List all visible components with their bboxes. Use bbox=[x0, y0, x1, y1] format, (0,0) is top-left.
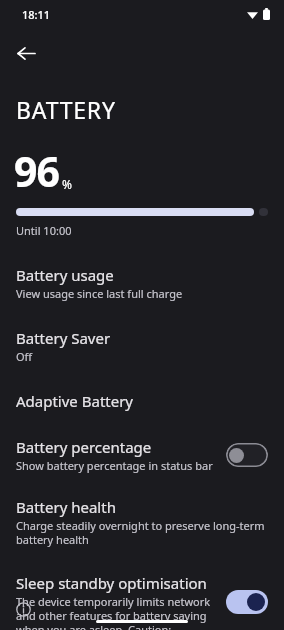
button[interactable]: Battery percentage bbox=[0, 437, 284, 473]
staticText: 96 bbox=[14, 143, 59, 199]
staticText: Show battery percentage in status bar bbox=[16, 458, 213, 473]
staticText: BATTERY bbox=[16, 94, 116, 125]
staticText: Adaptive Battery bbox=[16, 391, 134, 411]
staticText: Battery percentage bbox=[16, 437, 152, 457]
button[interactable]: Back bbox=[8, 35, 44, 71]
staticText: Off bbox=[16, 349, 33, 364]
staticText: Battery usage bbox=[16, 265, 114, 285]
staticText: View usage since last full charge bbox=[16, 286, 183, 301]
staticText: % bbox=[62, 176, 72, 192]
button[interactable]: Adaptive Battery bbox=[0, 391, 284, 411]
button[interactable]: Battery health bbox=[0, 497, 284, 547]
staticText: The device temporarily limits network an… bbox=[16, 594, 218, 630]
staticText: 18:11 bbox=[22, 7, 51, 22]
button[interactable]: Battery usage bbox=[0, 265, 284, 301]
staticText: Battery health bbox=[16, 497, 116, 517]
staticText: Battery Saver bbox=[16, 328, 111, 348]
button[interactable]: Battery percentage bbox=[226, 443, 268, 467]
button[interactable]: Sleep standby optimisation bbox=[0, 573, 284, 630]
staticText: Until 10:00 bbox=[16, 223, 72, 238]
button[interactable]: Sleep standby optimisation bbox=[226, 590, 268, 614]
staticText: Charge steadily overnight to preserve lo… bbox=[16, 518, 268, 547]
staticText: Sleep standby optimisation bbox=[16, 573, 207, 593]
button[interactable]: Battery Saver bbox=[0, 328, 284, 364]
button[interactable]: Information bbox=[9, 595, 37, 623]
